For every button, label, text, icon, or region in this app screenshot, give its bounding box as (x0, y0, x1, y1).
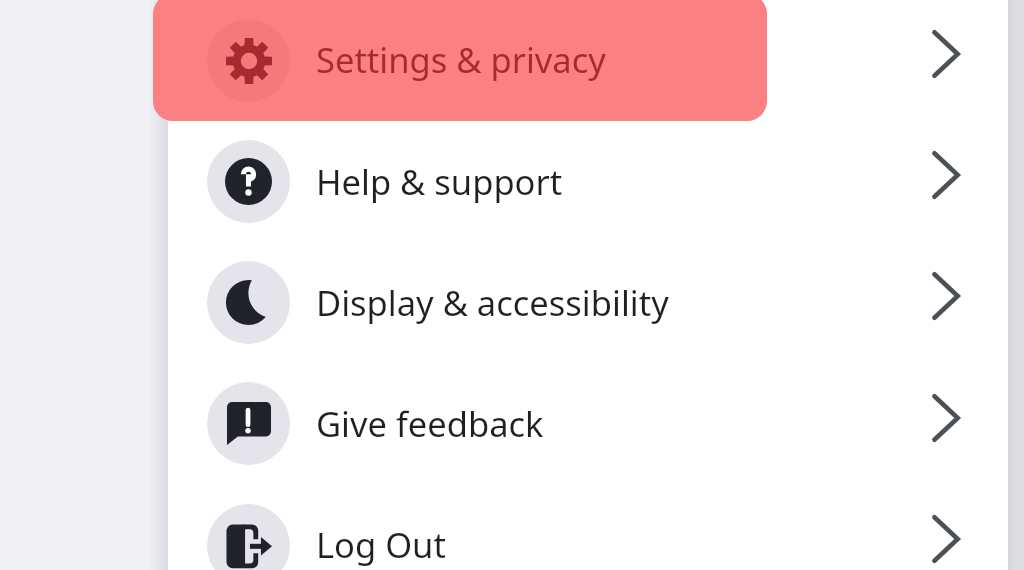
button[interactable]: Display & accessibility (918, 268, 974, 324)
staticText: Give feedback (316, 400, 544, 447)
staticText: Settings & privacy (316, 36, 606, 83)
button[interactable] (168, 485, 1008, 570)
staticText: Help & support (316, 158, 563, 205)
button[interactable]: Give feedback (918, 390, 974, 446)
staticText: Log Out (316, 521, 446, 568)
button[interactable]: Help & support (918, 147, 974, 203)
staticText: Display & accessibility (316, 279, 669, 326)
button[interactable]: Settings & privacy (918, 26, 974, 82)
button[interactable] (168, 364, 1008, 484)
button[interactable] (168, 122, 1008, 242)
button[interactable] (168, 243, 1008, 363)
button[interactable] (153, 0, 767, 121)
button[interactable]: Log Out (918, 511, 974, 567)
